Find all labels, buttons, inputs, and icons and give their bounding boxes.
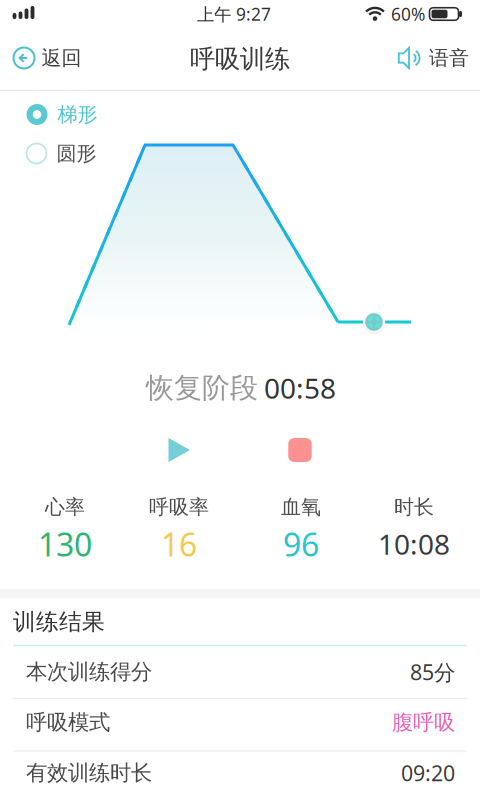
button[interactable]: 梯形 (26, 97, 136, 131)
staticText: 训练结果 (13, 608, 105, 636)
staticText: 09:20 (401, 759, 455, 787)
staticText: 梯形 (57, 102, 97, 127)
staticText: 10:08 (378, 525, 450, 563)
staticText: 96 (283, 523, 319, 565)
staticText: 血氧 (281, 495, 321, 519)
staticText: 呼吸模式 (26, 709, 110, 736)
button[interactable]: Play (168, 437, 190, 462)
button[interactable]: 返回 (0, 36, 97, 80)
staticText: 时长 (394, 495, 434, 519)
staticText: 呼吸训练 (190, 43, 290, 74)
staticText: 有效训练时长 (26, 760, 152, 786)
staticText: 130 (38, 523, 92, 565)
staticText: 本次训练得分 (26, 659, 152, 685)
staticText: 恢复阶段 (146, 371, 258, 405)
button[interactable]: Stop (288, 438, 312, 462)
button[interactable]: 圆形 (26, 136, 136, 170)
staticText: 圆形 (56, 141, 96, 166)
staticText: 心率 (45, 495, 85, 519)
staticText: 16 (161, 523, 197, 565)
staticText: 语音 (429, 46, 469, 70)
staticText: 60% (391, 2, 425, 25)
staticText: 呼吸率 (149, 495, 209, 519)
staticText: 返回 (41, 46, 81, 70)
staticText: 上午 9:27 (197, 2, 271, 25)
staticText: 85分 (410, 658, 455, 686)
staticText: 腹呼吸 (392, 709, 455, 736)
button[interactable]: 语音 (383, 36, 480, 80)
staticText: 00:58 (264, 369, 336, 407)
